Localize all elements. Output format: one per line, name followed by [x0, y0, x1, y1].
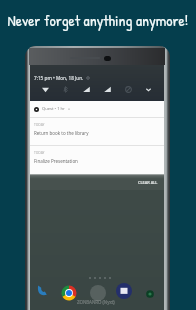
staticText: CLEAR ALL	[138, 180, 158, 185]
staticText: ZONBANRO (Nyxt)	[77, 299, 115, 305]
staticText: 7:15 pm • Mon, 18 Jun.	[34, 75, 84, 81]
staticText: TODAY	[34, 122, 45, 126]
button[interactable]: TODAY	[30, 118, 164, 145]
button[interactable]: Signal	[102, 84, 113, 95]
staticText: Never forget anything anymore!	[0, 10, 196, 31]
button[interactable]: Messages	[116, 283, 132, 299]
button[interactable]: CLEAR ALL	[136, 178, 160, 187]
button[interactable]: Phone	[34, 282, 50, 298]
button[interactable]: Mobile data	[81, 84, 92, 95]
button[interactable]: All apps	[90, 285, 106, 301]
staticText: Finalize Presentation	[34, 158, 78, 164]
button[interactable]: Settings	[142, 286, 158, 302]
staticText: Quest • 1 hr	[42, 106, 65, 112]
button[interactable]: TODAY	[30, 146, 164, 173]
button[interactable]: Expand	[143, 84, 154, 95]
button[interactable]: Do not disturb	[123, 84, 134, 95]
button[interactable]: Wi-Fi	[40, 84, 51, 95]
staticText: Return book to the library	[34, 130, 89, 136]
button[interactable]: Bluetooth	[60, 84, 71, 95]
button[interactable]: Quest • 1 hr	[34, 101, 164, 117]
staticText: TODAY	[34, 150, 45, 154]
button[interactable]: Chrome	[61, 285, 77, 301]
